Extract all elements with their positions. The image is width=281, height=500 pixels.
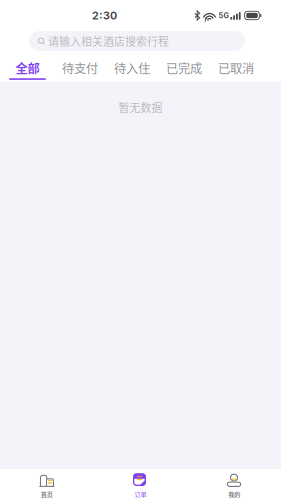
button[interactable]: 已取消 [218, 59, 254, 80]
staticText: 首页 [41, 490, 53, 498]
staticText: 请输入相关酒店搜索行程 [48, 33, 169, 49]
staticText: 暂无数据 [118, 99, 162, 115]
button[interactable]: 请输入相关酒店搜索行程 [29, 31, 245, 51]
button[interactable]: 待支付 [62, 59, 98, 80]
button[interactable]: 待入住 [114, 59, 150, 80]
staticText: 待支付 [62, 59, 98, 77]
staticText: 已取消 [218, 59, 254, 77]
staticText: 已完成 [166, 59, 202, 77]
staticText: 5G [218, 11, 229, 20]
button[interactable]: 已完成 [166, 59, 202, 80]
staticText: 待入住 [114, 59, 150, 77]
button[interactable]: 全部 [9, 59, 46, 80]
button[interactable]: 我的 [187, 469, 281, 500]
staticText: 我的 [228, 490, 240, 498]
button[interactable]: 首页 [0, 469, 94, 500]
button[interactable]: 订单 [94, 469, 187, 500]
staticText: 全部 [15, 59, 39, 77]
staticText: 2:30 [92, 9, 117, 22]
staticText: 订单 [134, 490, 146, 498]
